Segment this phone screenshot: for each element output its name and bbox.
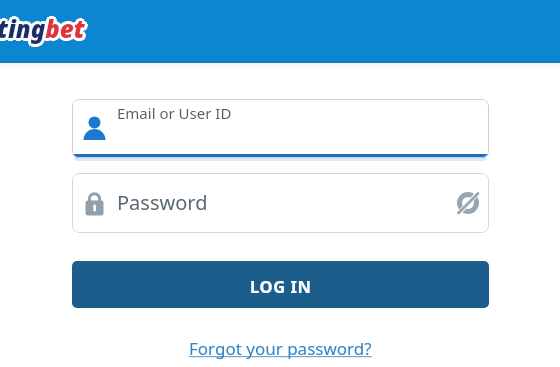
staticText: tingbet — [0, 14, 87, 47]
button[interactable]: Email or User ID — [72, 99, 489, 158]
staticText: tingbet — [0, 12, 83, 45]
staticText: tingbet — [0, 12, 88, 45]
staticText: tingbet — [0, 9, 85, 42]
staticText: Password — [117, 189, 208, 216]
staticText: Email or User ID — [117, 103, 232, 123]
staticText: tingbet — [0, 14, 83, 47]
staticText: tingbet — [0, 10, 87, 43]
staticText: tingbet — [0, 10, 83, 43]
staticText: tingbet — [0, 12, 85, 45]
staticText: tingbet — [0, 12, 82, 45]
staticText: tingbet — [0, 14, 85, 47]
staticText: tingbet — [0, 15, 85, 48]
button[interactable]: Forgot your password? — [189, 337, 372, 360]
staticText: LOG IN — [250, 275, 312, 297]
button[interactable]: LOG IN — [72, 261, 489, 308]
staticText: tingbet — [0, 10, 85, 43]
button[interactable]: Password — [72, 173, 489, 233]
staticText: tingbet — [0, 12, 87, 45]
